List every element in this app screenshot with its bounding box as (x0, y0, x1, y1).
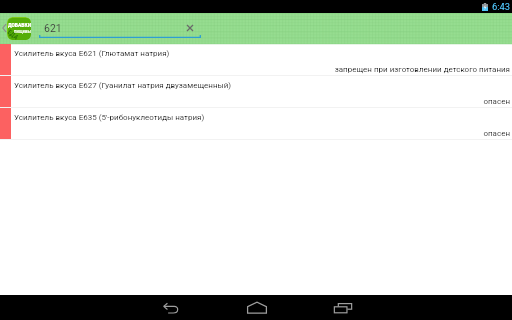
staticText: Усилитель вкуса E635 (5'-рибонуклеотиды … (14, 113, 205, 122)
button[interactable]: Recent apps (319, 295, 367, 320)
button[interactable]: Back (146, 295, 194, 320)
button[interactable]: Food additives app (7, 17, 31, 40)
staticText: 6:43 (492, 1, 511, 12)
staticText: опасен (0, 97, 510, 106)
staticText: 621 (44, 22, 62, 34)
button[interactable]: Clear search (185, 23, 194, 32)
button[interactable]: Усилитель вкуса E635 (5'-рибонуклеотиды … (0, 108, 512, 140)
button[interactable]: Navigate up (2, 24, 6, 32)
button[interactable]: Home (233, 295, 281, 320)
staticText: опасен (0, 129, 510, 138)
staticText: Усилитель вкуса E627 (Гуанилат натрия дв… (14, 81, 232, 90)
staticText: Усилитель вкуса E621 (Глютамат натрия) (14, 49, 170, 58)
button[interactable]: Усилитель вкуса E627 (Гуанилат натрия дв… (0, 76, 512, 108)
staticText: ДОБАВКИ (8, 22, 31, 29)
staticText: пищевые (14, 28, 31, 34)
staticText: запрещен при изготовлении детского питан… (0, 65, 510, 74)
button[interactable]: Усилитель вкуса E621 (Глютамат натрия) (0, 44, 512, 76)
staticText: ЕДА (7, 28, 20, 40)
